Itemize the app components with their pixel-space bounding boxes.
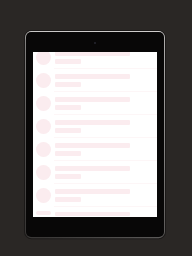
- button[interactable]: [33, 52, 157, 69]
- button[interactable]: [33, 161, 157, 184]
- button[interactable]: [33, 138, 157, 161]
- button[interactable]: [33, 69, 157, 92]
- button[interactable]: [33, 184, 157, 207]
- button[interactable]: [33, 92, 157, 115]
- button[interactable]: [33, 115, 157, 138]
